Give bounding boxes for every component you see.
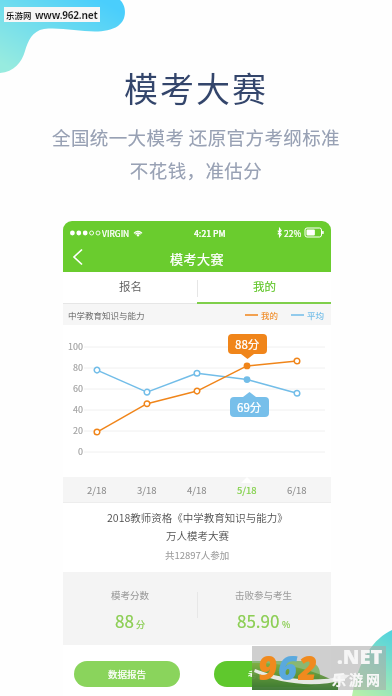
- staticText: 模考大赛: [0, 63, 392, 112]
- staticText: 22%: [284, 227, 302, 239]
- staticText: 80: [73, 361, 83, 374]
- staticText: 乐游网: [332, 669, 383, 689]
- staticText: 模考分数: [111, 588, 150, 602]
- button[interactable]: Back: [65, 244, 91, 270]
- staticText: .NET: [337, 643, 383, 670]
- staticText: 击败参与考生: [235, 588, 293, 602]
- staticText: 2018教师资格《中学教育知识与能力》: [107, 510, 288, 525]
- staticText: 20: [73, 424, 83, 437]
- staticText: 88: [115, 608, 134, 633]
- staticText: 乐游网: [6, 9, 32, 21]
- staticText: 报名: [119, 278, 142, 295]
- staticText: 分: [136, 618, 146, 631]
- staticText: 88分: [235, 336, 260, 353]
- staticText: 模考大赛: [170, 249, 225, 268]
- staticText: 60: [73, 382, 83, 395]
- button[interactable]: 报名: [63, 272, 197, 304]
- staticText: 我的: [253, 278, 276, 295]
- button[interactable]: 我的: [197, 272, 331, 304]
- button[interactable]: 考点练习: [214, 661, 320, 687]
- staticText: 万人模考大赛: [166, 528, 229, 543]
- staticText: 共12897人参加: [165, 548, 230, 562]
- staticText: 不花钱，准估分: [0, 157, 392, 184]
- button[interactable]: 数据报告: [74, 661, 180, 687]
- staticText: 85.90: [237, 608, 280, 633]
- staticText: 4/18: [187, 483, 207, 497]
- staticText: 5/18: [237, 483, 257, 497]
- staticText: 40: [73, 403, 83, 416]
- staticText: 全国统一大模考 还原官方考纲标准: [0, 124, 392, 151]
- staticText: 6/18: [287, 483, 307, 497]
- staticText: VIRGIN: [102, 227, 130, 239]
- staticText: 中学教育知识与能力: [68, 309, 145, 321]
- staticText: www.962.net: [35, 8, 98, 22]
- staticText: 3/18: [137, 483, 157, 497]
- staticText: 0: [78, 445, 83, 458]
- staticText: 考点练习: [248, 667, 287, 681]
- staticText: 69分: [237, 399, 262, 416]
- staticText: 2: [298, 645, 318, 689]
- staticText: 6: [278, 645, 298, 689]
- staticText: 2/18: [87, 483, 107, 497]
- staticText: 我的: [261, 309, 279, 321]
- staticText: %: [282, 618, 291, 631]
- staticText: 100: [68, 340, 83, 353]
- staticText: 4:21 PM: [194, 227, 226, 239]
- staticText: 平均: [307, 309, 325, 321]
- staticText: 数据报告: [108, 667, 147, 681]
- staticText: 9: [258, 645, 278, 689]
